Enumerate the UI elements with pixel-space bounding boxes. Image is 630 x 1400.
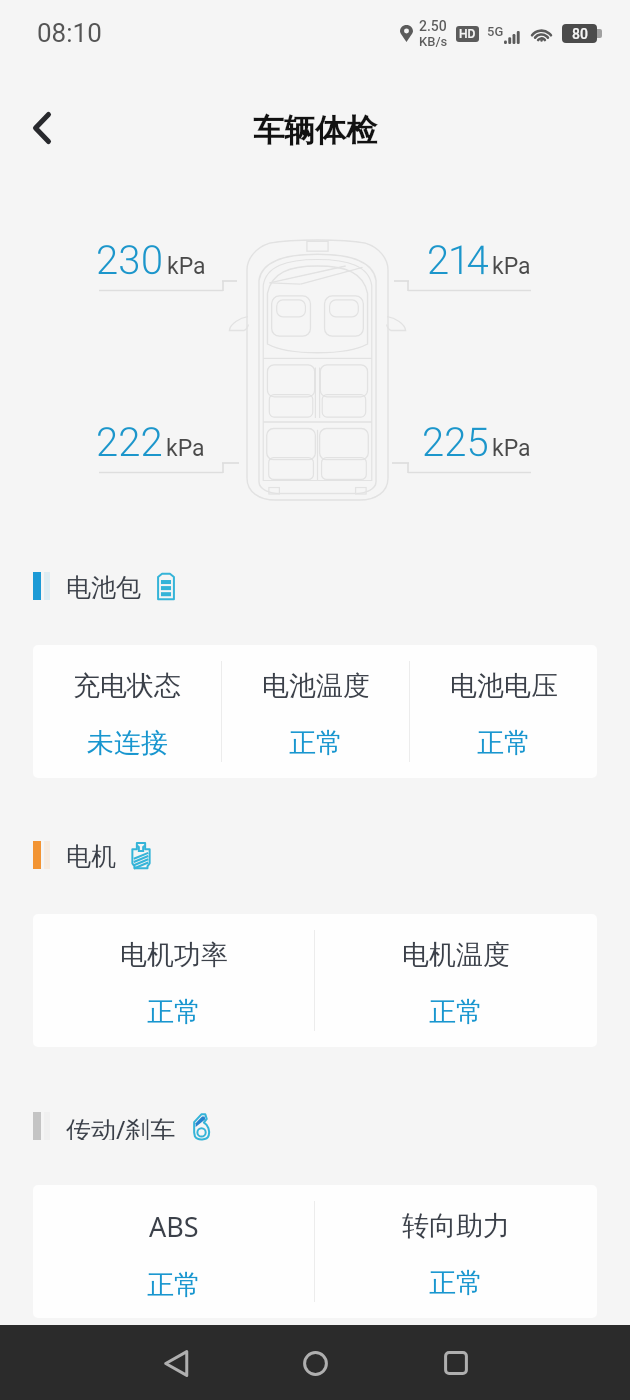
staticText: 车辆体检 [253,111,377,150]
button[interactable]: ABS [33,1185,314,1318]
staticText: 传动/刹车 [66,1112,176,1140]
staticText: 230 [96,237,164,284]
staticText: 222 [96,419,163,466]
staticText: 电池包 [66,572,141,600]
button[interactable]: Home [280,1328,350,1398]
staticText: 225 [422,419,489,466]
button[interactable]: 电池温度 [222,645,409,778]
staticText: 正常 [147,1268,201,1302]
button[interactable]: Back [141,1328,211,1398]
staticText: 电机温度 [402,938,510,972]
staticText: 5G [487,24,504,39]
staticText: HD [459,27,476,41]
staticText: kPa [167,253,206,280]
staticText: 未连接 [87,726,168,760]
staticText: ABS [149,1208,199,1245]
staticText: 电机 [66,841,116,869]
staticText: 正常 [289,726,343,760]
staticText: 正常 [477,726,531,760]
staticText: 正常 [429,1266,483,1300]
staticText: 充电状态 [73,669,181,703]
staticText: 电池电压 [450,669,558,703]
staticText: 正常 [147,995,201,1029]
staticText: 电机功率 [120,938,228,972]
staticText: 2.50 [419,18,447,34]
staticText: kPa [492,253,531,280]
staticText: kPa [492,435,531,462]
button[interactable]: 充电状态 [33,645,221,778]
staticText: KB/s [419,34,448,49]
button[interactable]: 电机功率 [33,914,314,1047]
button[interactable]: 电池电压 [410,645,597,778]
staticText: 08:10 [37,18,102,48]
staticText: 正常 [429,995,483,1029]
button[interactable]: 电机温度 [315,914,597,1047]
staticText: kPa [166,435,205,462]
button[interactable]: Back [15,101,69,155]
staticText: 80 [572,26,588,42]
button[interactable]: 转向助力 [315,1185,597,1318]
staticText: 214 [427,237,489,284]
staticText: 电池温度 [262,669,370,703]
staticText: 转向助力 [402,1209,510,1243]
button[interactable]: Recent apps [421,1328,491,1398]
